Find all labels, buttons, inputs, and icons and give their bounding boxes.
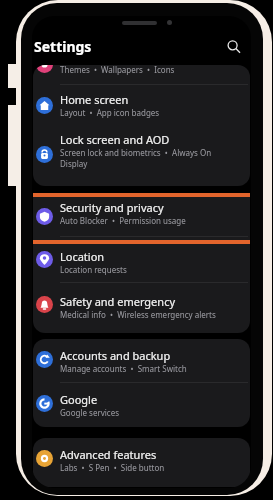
staticText: Labs • S Pen • Side button	[60, 462, 165, 473]
button[interactable]	[33, 348, 250, 370]
button[interactable]	[33, 95, 250, 117]
button[interactable]	[33, 293, 250, 315]
staticText: Layout • App icon badges	[60, 107, 160, 118]
staticText: Themes • Wallpapers • Icons	[60, 65, 175, 75]
button[interactable]	[33, 248, 250, 270]
staticText: Home screen	[60, 92, 129, 107]
staticText: Security and privacy	[60, 200, 164, 215]
button[interactable]	[33, 392, 250, 414]
button[interactable]: Search	[220, 33, 246, 59]
staticText: Manage accounts • Smart Switch	[60, 363, 187, 374]
staticText: Location requests	[60, 264, 127, 275]
staticText: Google	[60, 392, 98, 407]
staticText: Lock screen and AOD	[60, 132, 170, 147]
staticText: Medical info • Wireless emergency alerts	[60, 309, 216, 320]
staticText: Google services	[60, 407, 120, 418]
staticText: Accounts and backup	[60, 348, 171, 363]
staticText: Settings	[34, 37, 92, 56]
button[interactable]	[33, 447, 250, 469]
staticText: Display	[60, 158, 88, 169]
button[interactable]	[33, 143, 250, 165]
staticText: Safety and emergency	[60, 294, 176, 309]
staticText: Auto Blocker • Permission usage	[60, 215, 186, 226]
staticText: Location	[60, 249, 105, 264]
staticText: Screen lock and biometrics • Always On	[60, 147, 212, 158]
button[interactable]	[33, 205, 250, 227]
staticText: Advanced features	[60, 447, 157, 462]
